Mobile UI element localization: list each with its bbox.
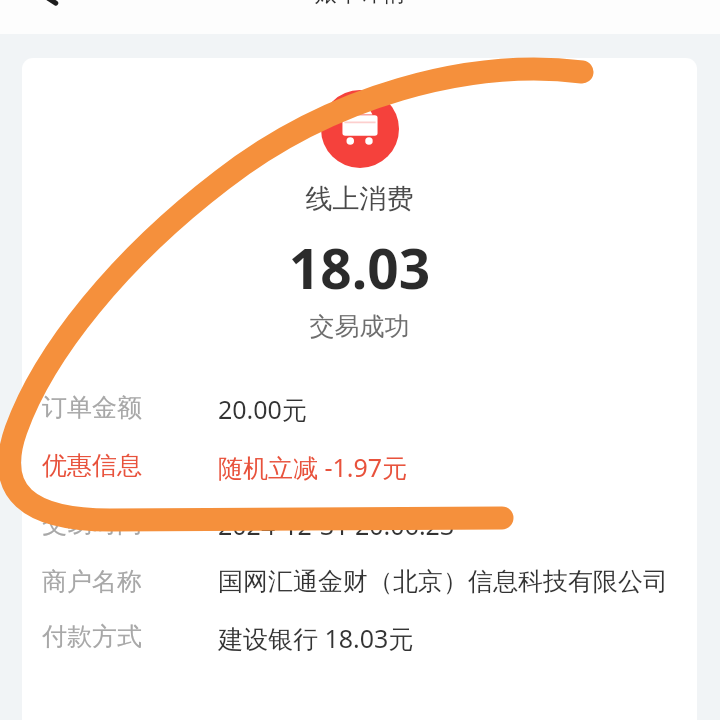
staticText: 优惠信息 xyxy=(42,450,218,481)
staticText: 建设银行 18.03元 xyxy=(218,621,414,655)
staticText: 交易成功 xyxy=(22,311,697,342)
staticText: 随机立减 -1.97元 xyxy=(218,450,408,484)
button[interactable]: 付款方式 xyxy=(22,609,697,667)
staticText: 18.03 xyxy=(22,230,697,305)
staticText: 20.00元 xyxy=(218,392,307,426)
button[interactable]: 订单金额 xyxy=(22,380,697,438)
staticText: 国网汇通金财（北京）信息科技有限公司 xyxy=(218,566,668,597)
staticText: 线上消费 xyxy=(22,182,697,216)
staticText: 交易时间 xyxy=(42,508,218,539)
staticText: 2024-12-31 20:06:23 xyxy=(218,508,455,542)
staticText: 付款方式 xyxy=(42,621,218,652)
button[interactable]: Back xyxy=(26,0,74,12)
button[interactable]: 交易时间 xyxy=(22,496,697,554)
button[interactable]: 优惠信息 xyxy=(22,438,697,496)
staticText: 账单详情 xyxy=(0,0,720,8)
staticText: 订单金额 xyxy=(42,392,218,423)
button[interactable]: 商户名称 xyxy=(22,554,697,609)
staticText: 商户名称 xyxy=(42,566,218,597)
